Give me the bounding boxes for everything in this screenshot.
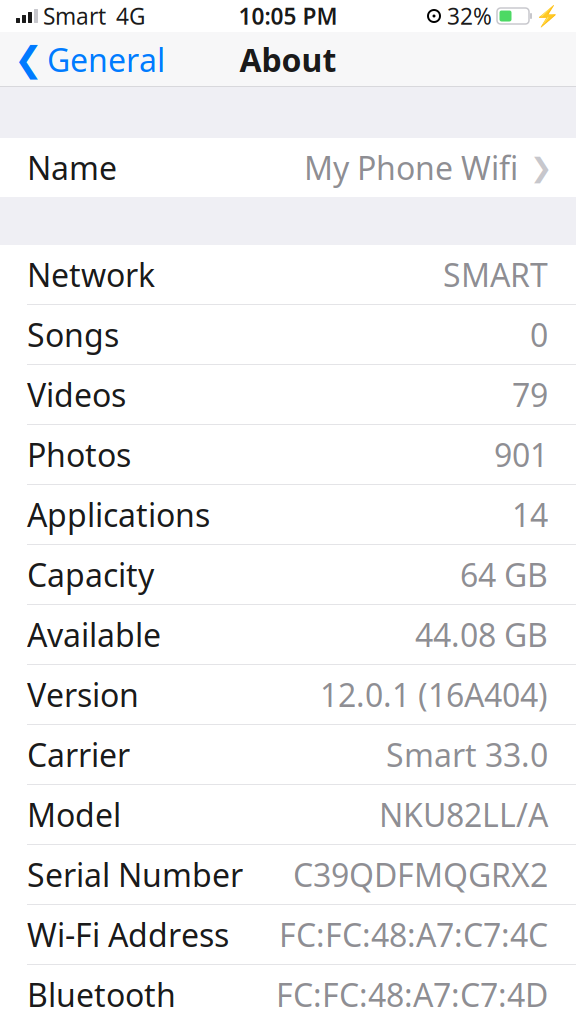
staticText: Bluetooth <box>27 973 176 1016</box>
staticText: Version <box>27 673 139 716</box>
staticText: Name <box>27 146 117 189</box>
staticText: Smart <box>43 1 106 31</box>
staticText: Available <box>27 613 161 656</box>
button[interactable]: Songs <box>0 305 576 364</box>
staticText: General <box>47 38 165 81</box>
staticText: ❮ <box>14 40 43 79</box>
staticText: Capacity <box>27 553 154 596</box>
staticText: FC:FC:48:A7:C7:4C <box>279 913 548 956</box>
button[interactable]: Carrier <box>0 725 576 784</box>
staticText: Smart 33.0 <box>386 733 548 776</box>
staticText: 44.08 GB <box>415 613 548 656</box>
staticText: About <box>239 38 336 81</box>
button[interactable]: Available <box>0 605 576 664</box>
staticText: Photos <box>27 433 131 476</box>
staticText: Carrier <box>27 733 130 776</box>
staticText: NKU82LL/A <box>379 793 548 836</box>
button[interactable]: Applications <box>0 485 576 544</box>
staticText: 10:05 PM <box>238 1 337 31</box>
button[interactable]: Wi-Fi Address <box>0 905 576 964</box>
staticText: Serial Number <box>27 853 243 896</box>
staticText: FC:FC:48:A7:C7:4D <box>276 973 548 1016</box>
staticText: 4G <box>116 1 146 31</box>
staticText: 32% <box>447 1 492 31</box>
staticText: 0 <box>530 313 548 356</box>
button[interactable]: Model <box>0 785 576 844</box>
button[interactable]: Videos <box>0 365 576 424</box>
button[interactable]: ❮ <box>0 32 179 87</box>
staticText: Applications <box>27 493 210 536</box>
staticText: 901 <box>494 433 548 476</box>
button[interactable]: Bluetooth <box>0 965 576 1024</box>
button[interactable]: Serial Number <box>0 845 576 904</box>
button[interactable]: Network <box>0 245 576 304</box>
button[interactable]: Photos <box>0 425 576 484</box>
button[interactable]: Name <box>0 138 576 197</box>
staticText: SMART <box>443 253 548 296</box>
staticText: Network <box>27 253 155 296</box>
staticText: Model <box>27 793 121 836</box>
button[interactable]: Version <box>0 665 576 724</box>
staticText: ⚡ <box>535 5 560 27</box>
button[interactable]: Capacity <box>0 545 576 604</box>
staticText: Songs <box>27 313 119 356</box>
staticText: 64 GB <box>460 553 548 596</box>
staticText: 79 <box>512 373 548 416</box>
staticText: 14 <box>512 493 548 536</box>
staticText: Videos <box>27 373 126 416</box>
staticText: C39QDFMQGRX2 <box>293 853 548 896</box>
staticText: 12.0.1 (16A404) <box>320 673 548 716</box>
staticText: ❯ <box>530 152 552 183</box>
staticText: My Phone Wifi <box>304 146 518 189</box>
staticText: Wi-Fi Address <box>27 913 229 956</box>
